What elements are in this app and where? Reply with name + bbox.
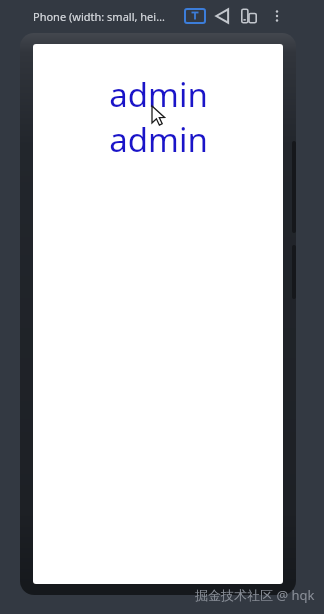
- button[interactable]: Devices: [239, 6, 259, 26]
- staticText: admin: [109, 117, 208, 162]
- button[interactable]: More options: [267, 6, 287, 26]
- button[interactable]: Previous: [213, 6, 233, 26]
- staticText: 掘金技术社区 @ hqk: [195, 586, 315, 604]
- button[interactable]: Text scale: [184, 8, 206, 24]
- staticText: admin: [109, 72, 208, 117]
- staticText: Phone (width: small, hei…: [33, 9, 165, 24]
